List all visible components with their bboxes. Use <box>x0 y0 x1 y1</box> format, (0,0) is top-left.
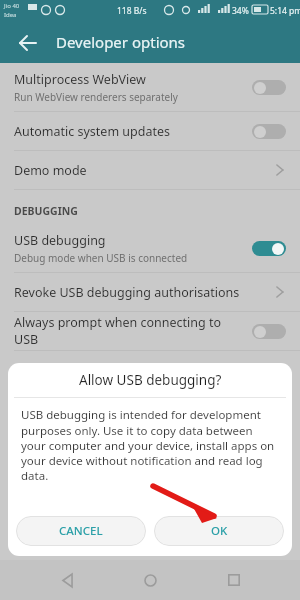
staticText: Idea <box>4 11 17 19</box>
staticText: Automatic system updates <box>14 123 170 140</box>
staticText: Developer options <box>56 32 186 52</box>
staticText: CANCEL <box>59 523 103 539</box>
button[interactable] <box>252 324 286 339</box>
staticText: Always prompt when connecting to USB <box>14 314 222 348</box>
staticText: Revoke USB debugging authorisations <box>14 284 272 301</box>
button[interactable]: Revoke USB debugging authorisations <box>0 273 300 311</box>
button[interactable] <box>252 80 286 95</box>
staticText: Run WebView renderers separately <box>14 90 178 104</box>
button[interactable]: CANCEL <box>16 516 146 546</box>
staticText: DEBUGGING <box>14 204 78 218</box>
button[interactable]: Automatic system updates <box>0 112 300 150</box>
button[interactable]: Back <box>50 563 84 597</box>
staticText: 118 B/s <box>117 5 147 17</box>
staticText: Multiprocess WebView <box>14 71 146 88</box>
button[interactable]: OK <box>154 516 284 546</box>
staticText: Allow ADB debugging in charge only <box>14 361 228 378</box>
button[interactable]: Always prompt when connecting to USB <box>0 312 300 350</box>
button[interactable] <box>252 124 286 139</box>
staticText: USB debugging <box>14 232 106 249</box>
button[interactable]: USB debugging <box>0 224 300 272</box>
staticText: Demo mode <box>14 162 272 179</box>
staticText: Debug mode when USB is connected <box>14 251 188 265</box>
staticText: 34% <box>232 5 249 17</box>
staticText: OK <box>211 523 228 539</box>
button[interactable]: Recents <box>217 563 251 597</box>
staticText: USB debugging is intended for developmen… <box>21 407 279 483</box>
button[interactable] <box>252 241 286 256</box>
button[interactable]: Demo mode <box>0 151 300 189</box>
staticText: 5:14 pm <box>270 5 300 17</box>
button[interactable]: Back <box>8 23 48 63</box>
button[interactable]: Home <box>133 563 167 597</box>
staticText: Allow USB debugging? <box>79 371 222 389</box>
button[interactable]: Multiprocess WebView <box>0 63 300 111</box>
staticText: Jio 40 <box>4 2 20 10</box>
